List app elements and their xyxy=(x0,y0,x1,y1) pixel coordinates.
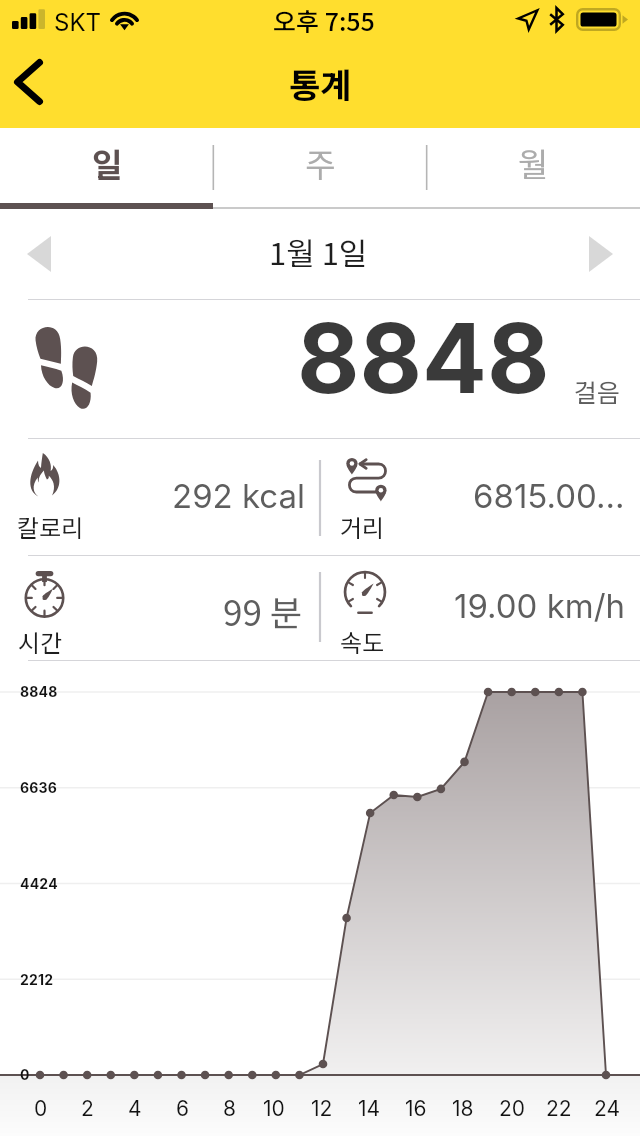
button[interactable]: 월 xyxy=(427,128,640,209)
button[interactable]: Next day xyxy=(562,209,640,299)
staticText: 20 xyxy=(499,1096,526,1121)
staticText: 0 xyxy=(20,1066,30,1083)
staticText: 4424 xyxy=(20,875,58,892)
staticText: 8848 xyxy=(297,300,550,416)
button[interactable]: 주 xyxy=(214,128,427,209)
staticText: 16 xyxy=(405,1096,427,1121)
staticText: 월 xyxy=(518,139,549,187)
staticText: 6636 xyxy=(20,779,58,796)
button[interactable]: 일 xyxy=(0,128,214,209)
staticText: 거리 xyxy=(340,509,385,544)
staticText: 6 xyxy=(176,1096,190,1121)
button[interactable]: Back xyxy=(0,40,70,128)
staticText: 24 xyxy=(594,1096,621,1121)
staticText: 통계 xyxy=(289,59,352,108)
staticText: 4 xyxy=(128,1096,142,1121)
staticText: 12 xyxy=(311,1096,333,1121)
staticText: 2 xyxy=(81,1096,94,1121)
staticText: 10 xyxy=(263,1096,285,1121)
staticText: 1월 1일 xyxy=(269,229,368,274)
staticText: SKT xyxy=(54,8,102,37)
staticText: 시간 xyxy=(18,624,63,659)
staticText: 292 kcal xyxy=(172,476,306,516)
staticText: 22 xyxy=(546,1096,572,1121)
staticText: 14 xyxy=(358,1096,381,1121)
staticText: 일 xyxy=(92,139,123,187)
staticText: 0 xyxy=(34,1096,48,1121)
staticText: 주 xyxy=(305,139,336,187)
staticText: 8 xyxy=(223,1096,236,1121)
staticText: 99 분 xyxy=(223,585,302,636)
staticText: 6815.00... xyxy=(473,476,625,516)
button[interactable]: Previous day xyxy=(0,209,78,299)
staticText: 8848 xyxy=(20,683,58,700)
staticText: 오후 7:55 xyxy=(273,2,375,38)
staticText: 18 xyxy=(452,1096,474,1121)
staticText: 속도 xyxy=(340,624,385,659)
staticText: 2212 xyxy=(20,971,54,988)
staticText: 칼로리 xyxy=(17,509,84,544)
staticText: 걸음 xyxy=(574,373,621,409)
staticText: 19.00 km/h xyxy=(454,586,626,626)
